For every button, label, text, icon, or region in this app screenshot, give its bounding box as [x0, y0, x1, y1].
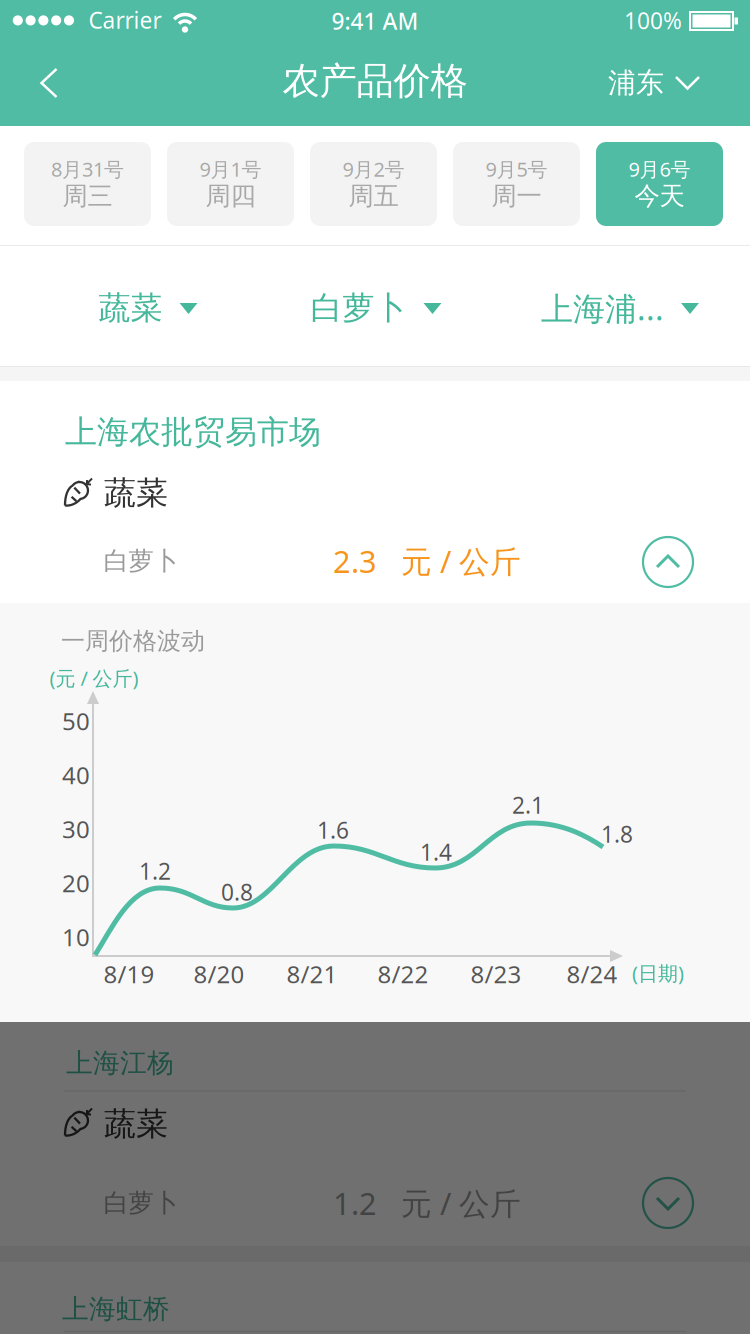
- staticText: 白萝卜: [310, 288, 406, 328]
- staticText: 周三: [62, 180, 112, 211]
- staticText: 蔬菜: [104, 473, 168, 513]
- staticText: 1.8: [601, 819, 633, 849]
- staticText: 周四: [205, 180, 255, 211]
- staticText: 上海江杨: [66, 1047, 174, 1079]
- staticText: 8/24: [566, 958, 617, 990]
- staticText: 8/19: [103, 958, 154, 990]
- button[interactable]: 9月2号: [310, 142, 437, 226]
- staticText: 2.3 元 / 公斤: [333, 541, 521, 581]
- staticText: 1.2 元 / 公斤: [333, 1183, 521, 1223]
- staticText: 40: [62, 759, 90, 791]
- button[interactable]: 展开 白萝卜 价格: [0, 1158, 750, 1246]
- staticText: 9月2号: [342, 156, 404, 182]
- staticText: 白萝卜: [103, 545, 178, 576]
- staticText: 10: [62, 921, 90, 953]
- staticText: 8/22: [377, 958, 428, 990]
- staticText: 2.1: [512, 790, 544, 820]
- staticText: (日期): [632, 960, 684, 986]
- button[interactable]: 收起 白萝卜 价格: [0, 511, 750, 603]
- staticText: 农产品价格: [282, 58, 467, 104]
- staticText: 上海农批贸易市场: [65, 412, 321, 452]
- staticText: (元 / 公斤): [49, 665, 138, 691]
- button[interactable]: 9月1号: [167, 142, 294, 226]
- staticText: 白萝卜: [103, 1187, 178, 1218]
- staticText: 8/21: [286, 958, 337, 990]
- staticText: 上海浦...: [541, 287, 664, 329]
- staticText: 100%: [624, 5, 682, 35]
- staticText: 周五: [348, 180, 398, 211]
- staticText: 周一: [491, 180, 541, 211]
- staticText: 1.4: [420, 837, 452, 867]
- button[interactable]: 选择地区 浦东: [608, 66, 700, 100]
- staticText: 0.8: [221, 877, 253, 907]
- button[interactable]: 8月31号: [24, 142, 151, 226]
- staticText: 8月31号: [51, 156, 124, 182]
- staticText: 一周价格波动: [61, 626, 205, 656]
- button[interactable]: 9月5号: [453, 142, 580, 226]
- staticText: 1.6: [317, 815, 349, 845]
- button[interactable]: 白萝卜: [310, 248, 441, 368]
- button[interactable]: 上海浦...: [541, 248, 699, 368]
- staticText: 1.2: [139, 856, 171, 886]
- staticText: 50: [62, 705, 90, 737]
- staticText: 蔬菜: [98, 288, 162, 328]
- staticText: Carrier: [88, 5, 161, 35]
- staticText: 蔬菜: [104, 1104, 168, 1144]
- staticText: 8/23: [470, 958, 521, 990]
- staticText: 9月1号: [199, 156, 261, 182]
- staticText: 9月6号: [628, 156, 690, 182]
- staticText: 9:41 AM: [331, 6, 418, 36]
- button[interactable]: Back: [27, 61, 71, 105]
- staticText: 今天: [634, 180, 684, 211]
- staticText: 8/20: [193, 958, 244, 990]
- staticText: 30: [62, 813, 90, 845]
- staticText: 9月5号: [485, 156, 547, 182]
- button[interactable]: 9月6号: [596, 142, 723, 226]
- button[interactable]: 蔬菜: [98, 248, 197, 368]
- staticText: 浦东: [608, 66, 664, 100]
- staticText: 20: [62, 867, 90, 899]
- staticText: 上海虹桥: [62, 1293, 170, 1325]
